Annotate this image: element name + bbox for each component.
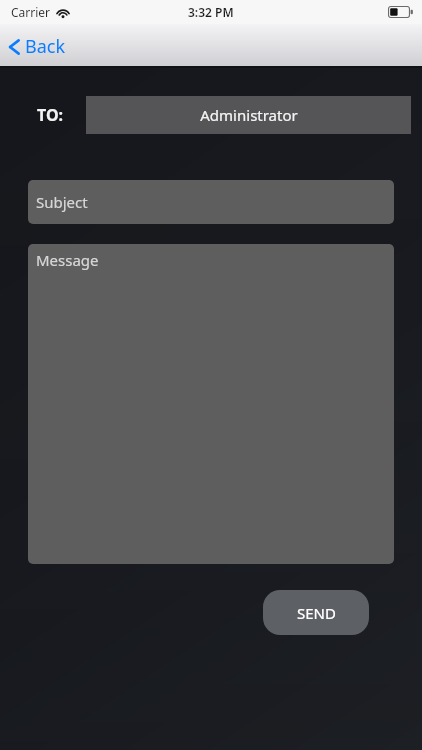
staticText: SEND <box>297 603 336 623</box>
staticText: Administrator <box>200 105 298 125</box>
staticText: Carrier <box>11 4 51 20</box>
staticText: Subject <box>36 192 88 212</box>
button[interactable]: Back <box>0 28 80 65</box>
button[interactable]: Subject <box>28 180 394 224</box>
staticText: Back <box>25 34 66 59</box>
button[interactable]: SEND <box>263 590 369 635</box>
button[interactable]: Administrator <box>86 96 411 134</box>
staticText: 3:32 PM <box>188 4 234 20</box>
staticText: Message <box>36 250 99 270</box>
button[interactable]: Message <box>28 244 394 564</box>
staticText: TO: <box>37 104 64 126</box>
